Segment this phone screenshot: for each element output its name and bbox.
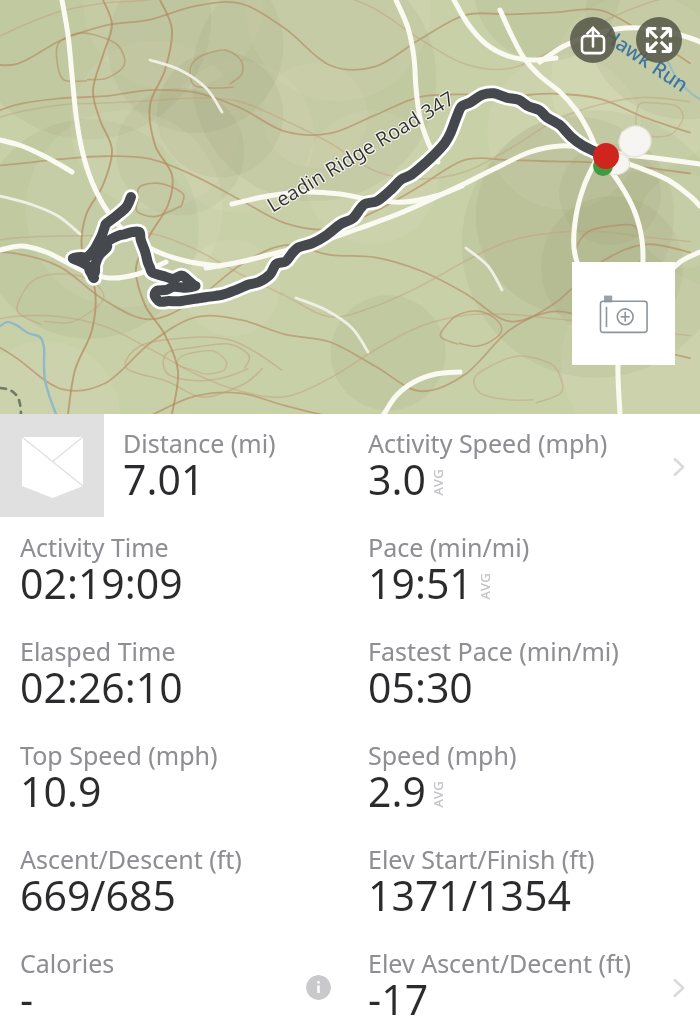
staticText: Fastest Pace (min/mi) (368, 634, 619, 668)
button[interactable]: Distance (mi) (0, 414, 700, 517)
button[interactable]: Info (306, 975, 331, 1000)
staticText: Pace (min/mi) (368, 530, 530, 564)
button[interactable]: Add photo (572, 262, 675, 365)
button[interactable]: More (666, 975, 692, 1001)
staticText: 7.01 (123, 451, 205, 507)
button[interactable]: Ascent/Descent (ft) (0, 829, 700, 933)
button[interactable]: Activity Time (0, 517, 700, 621)
staticText: Speed (mph) (368, 738, 517, 772)
staticText: Elasped Time (20, 634, 176, 668)
staticText: 10.9 (20, 763, 102, 819)
button[interactable]: More (666, 454, 692, 480)
staticText: Distance (mi) (123, 426, 276, 460)
staticText: 3.0 (368, 451, 426, 507)
staticText: Activity Speed (mph) (368, 426, 608, 460)
staticText: Leadin Ridge Road 347 (262, 84, 461, 218)
staticText: AVG (428, 468, 446, 495)
staticText: Hawk Run (598, 21, 694, 98)
staticText: Activity Time (20, 530, 169, 564)
staticText: 05:30 (368, 659, 473, 715)
button[interactable]: Share (570, 17, 616, 63)
staticText: Leadin Ridge Road 347 (261, 83, 459, 217)
staticText: Ascent/Descent (ft) (20, 842, 242, 876)
staticText: Calories (20, 946, 115, 980)
button[interactable]: Elasped Time (0, 621, 700, 725)
staticText: AVG (475, 572, 493, 599)
staticText: 1371/1354 (368, 867, 571, 923)
staticText: 669/685 (20, 867, 176, 923)
staticText: Leadin Ridge Road 347 (262, 85, 460, 219)
staticText: Top Speed (mph) (20, 738, 218, 772)
staticText: 02:26:10 (20, 659, 183, 715)
staticText: - (20, 971, 34, 1023)
staticText: Leadin Ridge Road 347 (261, 85, 459, 219)
staticText: 2.9 (368, 763, 426, 819)
staticText: AVG (428, 780, 446, 807)
staticText: Leadin Ridge Road 347 (262, 84, 460, 218)
button[interactable]: Top Speed (mph) (0, 725, 700, 829)
staticText: 02:19:09 (20, 555, 183, 611)
staticText: 19:51 (368, 555, 473, 611)
staticText: -17 (368, 971, 429, 1023)
staticText: Elev Start/Finish (ft) (368, 842, 595, 876)
staticText: Elev Ascent/Decent (ft) (368, 946, 632, 980)
button[interactable]: Calories (0, 933, 700, 1023)
button[interactable]: Expand map (636, 17, 682, 63)
